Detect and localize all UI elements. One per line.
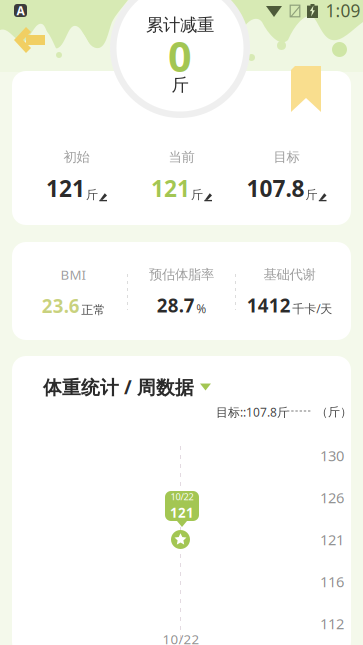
staticText: 130: [320, 446, 344, 465]
staticText: 正常: [81, 302, 105, 317]
staticText: 斤: [191, 187, 203, 202]
staticText: 112: [320, 614, 344, 633]
button[interactable]: 初始: [46, 149, 107, 203]
staticText: 10/22: [162, 630, 199, 645]
staticText: 0: [168, 29, 192, 83]
staticText: 1:09: [325, 0, 360, 22]
staticText: 116: [320, 572, 344, 591]
staticText: 121: [170, 504, 194, 521]
staticText: 初始: [63, 149, 89, 165]
staticText: 斤: [305, 187, 317, 202]
staticText: 预估体脂率: [149, 266, 214, 283]
staticText: 23.6: [42, 293, 80, 318]
staticText: 斤: [171, 74, 188, 96]
staticText: 体重统计 / 周数据: [43, 375, 194, 399]
button[interactable]: 目标: [246, 149, 326, 203]
staticText: 累计减重: [146, 14, 214, 36]
staticText: 121: [320, 530, 344, 549]
staticText: 107.8: [246, 173, 304, 203]
staticText: 目标::107.8斤: [216, 404, 289, 420]
staticText: （斤）: [316, 405, 352, 419]
staticText: 目标: [273, 149, 299, 165]
staticText: BMI: [60, 266, 86, 283]
button[interactable]: 当前: [151, 149, 212, 203]
staticText: 28.7: [157, 293, 195, 318]
button[interactable]: Back: [14, 27, 45, 53]
staticText: 千卡/天: [292, 301, 332, 316]
staticText: 121: [151, 173, 190, 203]
staticText: A: [16, 2, 24, 18]
staticText: %: [196, 301, 206, 316]
staticText: 斤: [86, 187, 98, 202]
staticText: 基础代谢: [263, 266, 315, 283]
staticText: 1412: [247, 293, 291, 318]
staticText: 10/22: [170, 490, 193, 503]
staticText: 121: [46, 173, 85, 203]
staticText: 126: [320, 488, 344, 507]
staticText: 当前: [168, 149, 194, 165]
button[interactable]: 体重统计 / 周数据: [43, 375, 263, 399]
